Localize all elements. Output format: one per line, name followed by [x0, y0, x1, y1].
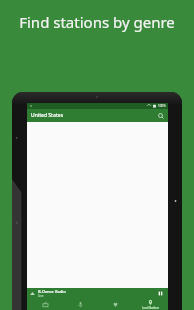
staticText: United States — [31, 112, 64, 119]
button[interactable]: Podcasts — [63, 299, 98, 310]
button[interactable]: United States — [27, 109, 168, 122]
staticText: Local Stations — [142, 306, 159, 310]
button[interactable]: Local Stations — [133, 299, 168, 310]
button[interactable]: Pause — [155, 288, 166, 299]
button[interactable]: Favourites — [98, 299, 133, 310]
staticText: 100% — [158, 104, 166, 108]
staticText: Find stations by genre — [18, 12, 176, 32]
button[interactable]: Search — [154, 109, 167, 122]
button[interactable]: B-Dance Radio — [27, 288, 168, 299]
staticText: Live — [38, 294, 44, 298]
staticText: B-Dance Radio — [38, 289, 66, 294]
button[interactable]: Radio — [27, 299, 63, 310]
